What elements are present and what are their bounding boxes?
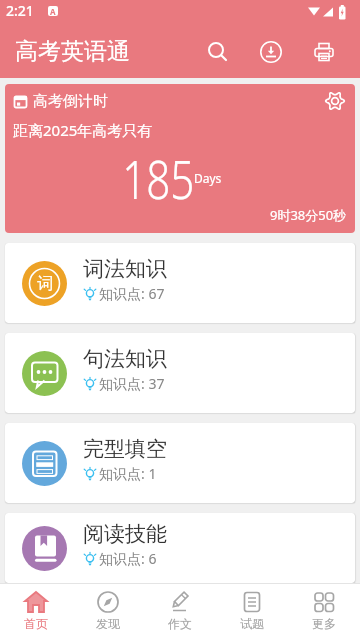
staticText: 距离2025年高考只有	[13, 120, 153, 140]
button[interactable]: 试题	[216, 584, 288, 639]
button[interactable]	[324, 90, 346, 112]
button[interactable]: 更多	[288, 584, 360, 639]
button[interactable]: 阅读技能	[5, 513, 355, 583]
staticText: 词法知识	[83, 256, 167, 282]
staticText: A	[50, 6, 56, 16]
staticText: 知识点: 1	[99, 464, 157, 483]
staticText: 知识点: 37	[99, 374, 165, 393]
staticText: 知识点: 67	[99, 284, 165, 303]
button[interactable]	[297, 25, 350, 78]
button[interactable]: 发现	[72, 584, 144, 639]
button[interactable]: 高考倒计时	[5, 84, 355, 233]
button[interactable]: 作文	[144, 584, 216, 639]
staticText: 句法知识	[83, 346, 167, 372]
button[interactable]	[244, 25, 297, 78]
staticText: Days	[194, 170, 222, 186]
button[interactable]: 完型填空	[5, 423, 355, 503]
staticText: 知识点: 6	[99, 549, 157, 568]
staticText: 试题	[240, 616, 264, 631]
staticText: 阅读技能	[83, 521, 167, 547]
staticText: 185	[122, 141, 195, 207]
staticText: 9时38分50秒	[270, 206, 347, 224]
staticText: 更多	[312, 616, 336, 631]
staticText: 高考英语通	[15, 37, 130, 66]
staticText: 2:21	[6, 1, 34, 20]
button[interactable]	[191, 25, 244, 78]
button[interactable]: 词	[5, 243, 355, 323]
staticText: 发现	[96, 616, 120, 631]
button[interactable]: 首页	[0, 584, 72, 639]
staticText: 完型填空	[83, 436, 167, 462]
staticText: 作文	[168, 616, 192, 631]
staticText: 首页	[24, 616, 48, 631]
button[interactable]: 句法知识	[5, 333, 355, 413]
staticText: 高考倒计时	[33, 92, 108, 111]
staticText: 词	[37, 274, 53, 294]
